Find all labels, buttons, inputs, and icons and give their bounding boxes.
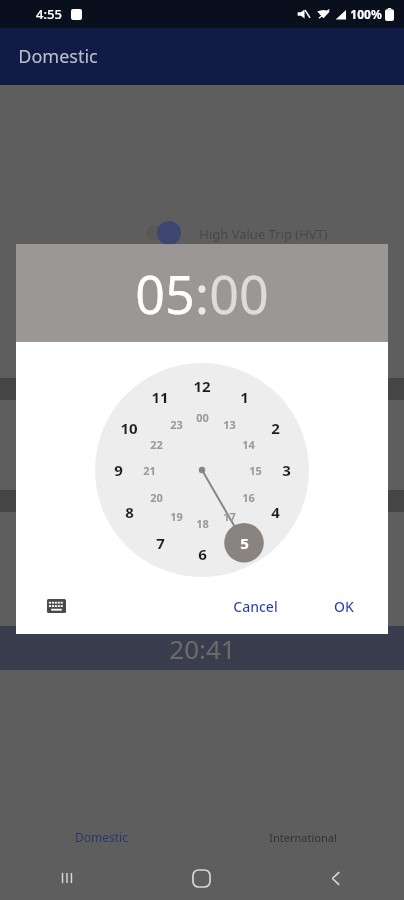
staticText: 16	[242, 490, 255, 505]
staticText: 20:41	[169, 631, 236, 666]
staticText: 20	[150, 490, 163, 505]
button[interactable]	[0, 218, 404, 248]
staticText: International	[269, 830, 337, 845]
staticText: 00	[196, 410, 209, 425]
button[interactable]: Cancel	[223, 589, 288, 624]
staticText: 13	[223, 417, 236, 432]
button[interactable]: International	[202, 818, 404, 856]
staticText: 3	[282, 460, 291, 480]
button[interactable]: Home	[134, 856, 269, 900]
button[interactable]: Domestic	[0, 818, 202, 856]
staticText: :	[195, 258, 209, 329]
button[interactable]: Recents	[0, 856, 134, 900]
staticText: 19	[170, 509, 183, 524]
staticText: 6	[198, 544, 207, 564]
staticText: 14	[242, 437, 255, 452]
staticText: 4:55	[36, 5, 62, 23]
staticText: 15	[249, 463, 262, 478]
staticText: 11	[151, 387, 169, 407]
staticText: 7	[156, 533, 165, 553]
staticText: OK	[334, 597, 354, 616]
staticText: 100%	[350, 6, 382, 22]
staticText: 5	[240, 533, 249, 553]
staticText: 21	[143, 463, 156, 478]
staticText: 2	[271, 418, 280, 438]
button[interactable]: Back	[269, 856, 404, 900]
staticText: 05	[135, 258, 195, 329]
staticText: 23	[170, 417, 183, 432]
staticText: 8	[125, 502, 134, 522]
button[interactable]: OK	[324, 589, 364, 624]
staticText: 1	[240, 387, 249, 407]
staticText: 12	[193, 376, 211, 396]
staticText: Domestic	[18, 44, 98, 69]
staticText: 10	[120, 418, 138, 438]
staticText: 18	[196, 516, 209, 531]
staticText: 4	[271, 502, 280, 522]
staticText: 00	[209, 258, 269, 329]
button[interactable]: 12	[95, 363, 309, 577]
staticText: 17	[223, 509, 236, 524]
button[interactable]: 05	[16, 244, 388, 342]
staticText: 22	[150, 437, 163, 452]
staticText: 9	[114, 460, 123, 480]
button[interactable]: Switch to text input	[38, 588, 74, 624]
staticText: Cancel	[233, 597, 278, 616]
staticText: Domestic	[75, 829, 128, 845]
staticText: High Value Trip (HVT)	[199, 225, 328, 243]
